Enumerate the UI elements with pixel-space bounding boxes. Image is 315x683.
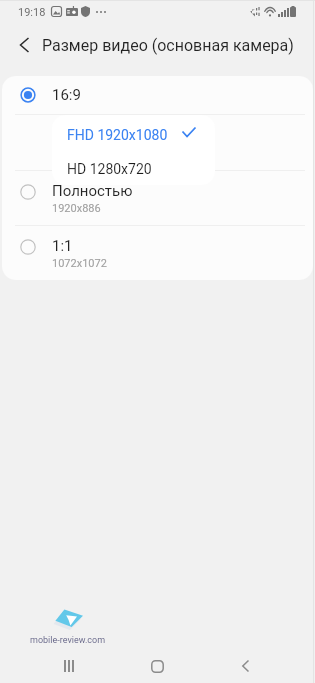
- button[interactable]: [2, 114, 313, 170]
- staticText: FHD 1920x1080: [67, 127, 168, 143]
- staticText: 1072x1072: [52, 257, 107, 270]
- staticText: Размер видео (основная камера): [42, 36, 294, 55]
- staticText: HD 1280x720: [67, 161, 152, 177]
- button[interactable]: 1:1: [2, 225, 313, 280]
- staticText: 19:18: [18, 6, 46, 19]
- staticText: 1920x886: [52, 202, 101, 215]
- button[interactable]: Back: [228, 649, 262, 683]
- staticText: 16:9: [52, 86, 81, 104]
- staticText: mobile-review.com: [30, 635, 106, 646]
- button[interactable]: HD 1280x720: [52, 150, 215, 185]
- button[interactable]: Home: [140, 649, 174, 683]
- staticText: 1:1: [52, 237, 73, 255]
- button[interactable]: Полностью: [2, 170, 313, 225]
- button[interactable]: Recent apps: [52, 649, 86, 683]
- button[interactable]: 16:9: [2, 76, 313, 114]
- button[interactable]: Back: [12, 32, 38, 58]
- button[interactable]: FHD 1920x1080: [52, 115, 215, 150]
- staticText: Полностью: [52, 182, 133, 200]
